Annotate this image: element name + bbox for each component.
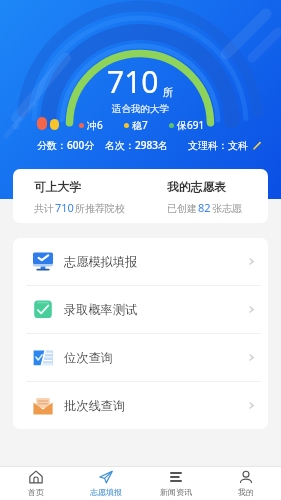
button[interactable]: 首页 (0, 467, 71, 500)
button[interactable]: 我的志愿表 (140, 169, 268, 223)
staticText: 共计 (34, 202, 54, 215)
staticText: 志愿模拟填报 (64, 254, 138, 269)
staticText: 冲6 (87, 118, 103, 132)
staticText: 批次线查询 (64, 398, 125, 413)
staticText: 名次：2983名 (105, 138, 168, 152)
button[interactable]: 批次线查询 (13, 382, 268, 429)
staticText: 录取概率测试 (64, 302, 138, 317)
staticText: 我的志愿表 (167, 180, 226, 195)
staticText: 适合我的大学 (112, 103, 169, 115)
button[interactable]: 位次查询 (13, 334, 268, 381)
staticText: 710 (55, 200, 74, 215)
staticText: 所 (163, 86, 174, 99)
staticText: 新闻资讯 (160, 487, 192, 497)
staticText: 710 (107, 61, 159, 102)
button[interactable]: Edit (251, 140, 262, 151)
staticText: 稳7 (132, 118, 148, 132)
staticText: 可上大学 (34, 180, 82, 195)
staticText: 82 (198, 200, 211, 215)
staticText: 分数：600分 (37, 138, 95, 152)
button[interactable]: 可上大学 (13, 169, 140, 223)
staticText: 志愿填报 (90, 487, 122, 497)
staticText: 已创建 (167, 202, 197, 215)
button[interactable]: 我的 (211, 467, 281, 500)
staticText: 首页 (28, 487, 44, 497)
button[interactable]: 志愿填报 (71, 467, 141, 500)
staticText: 保691 (177, 118, 205, 132)
button[interactable]: 录取概率测试 (13, 286, 268, 333)
button[interactable]: 新闻资讯 (141, 467, 211, 500)
staticText: 所推荐院校 (75, 202, 125, 215)
button[interactable]: 志愿模拟填报 (13, 238, 268, 285)
staticText: 张志愿 (212, 202, 242, 215)
staticText: 我的 (238, 487, 254, 497)
staticText: 位次查询 (64, 350, 113, 365)
staticText: 文理科：文科 (188, 139, 248, 152)
